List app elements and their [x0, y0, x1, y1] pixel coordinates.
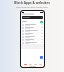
button[interactable] — [22, 35, 43, 38]
button[interactable]: Tab 3 — [33, 63, 38, 66]
button[interactable]: Tab 4 — [38, 63, 43, 66]
button[interactable]: Tab 2 — [28, 63, 33, 66]
button[interactable] — [22, 38, 43, 41]
button[interactable] — [22, 29, 43, 32]
button[interactable] — [22, 41, 43, 44]
staticText: Block Apps & websites — [2, 1, 62, 5]
button[interactable]: Add — [40, 56, 43, 59]
button[interactable] — [22, 23, 43, 26]
staticText: Stay focused on what matters most — [2, 6, 62, 9]
button[interactable] — [22, 16, 43, 19]
button[interactable] — [22, 32, 43, 35]
button[interactable]: Tab 1 — [22, 63, 28, 66]
button[interactable] — [22, 26, 43, 29]
other: Enabled — [40, 21, 43, 23]
button[interactable]: Enabled — [22, 20, 43, 23]
